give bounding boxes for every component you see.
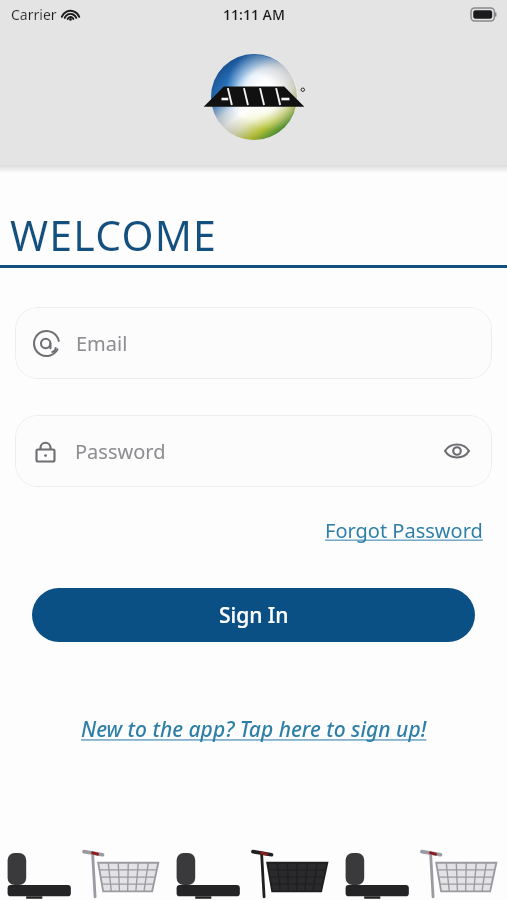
staticText: WELCOME bbox=[10, 207, 218, 263]
button[interactable]: Show password bbox=[440, 434, 474, 468]
staticText: Email bbox=[76, 330, 128, 357]
staticText: Forgot Password bbox=[325, 517, 483, 544]
button[interactable]: Sign In bbox=[32, 588, 475, 642]
staticText: 11:11 AM bbox=[223, 5, 285, 24]
staticText: Carrier bbox=[11, 5, 57, 24]
button[interactable]: New to the app? Tap here to sign up! bbox=[81, 715, 427, 744]
staticText: Password bbox=[75, 438, 166, 465]
button[interactable]: Email bbox=[15, 307, 492, 379]
staticText: New to the app? Tap here to sign up! bbox=[81, 715, 427, 744]
button[interactable]: Password bbox=[15, 415, 492, 487]
staticText: Sign In bbox=[219, 601, 289, 630]
button[interactable]: Forgot Password bbox=[325, 517, 483, 544]
